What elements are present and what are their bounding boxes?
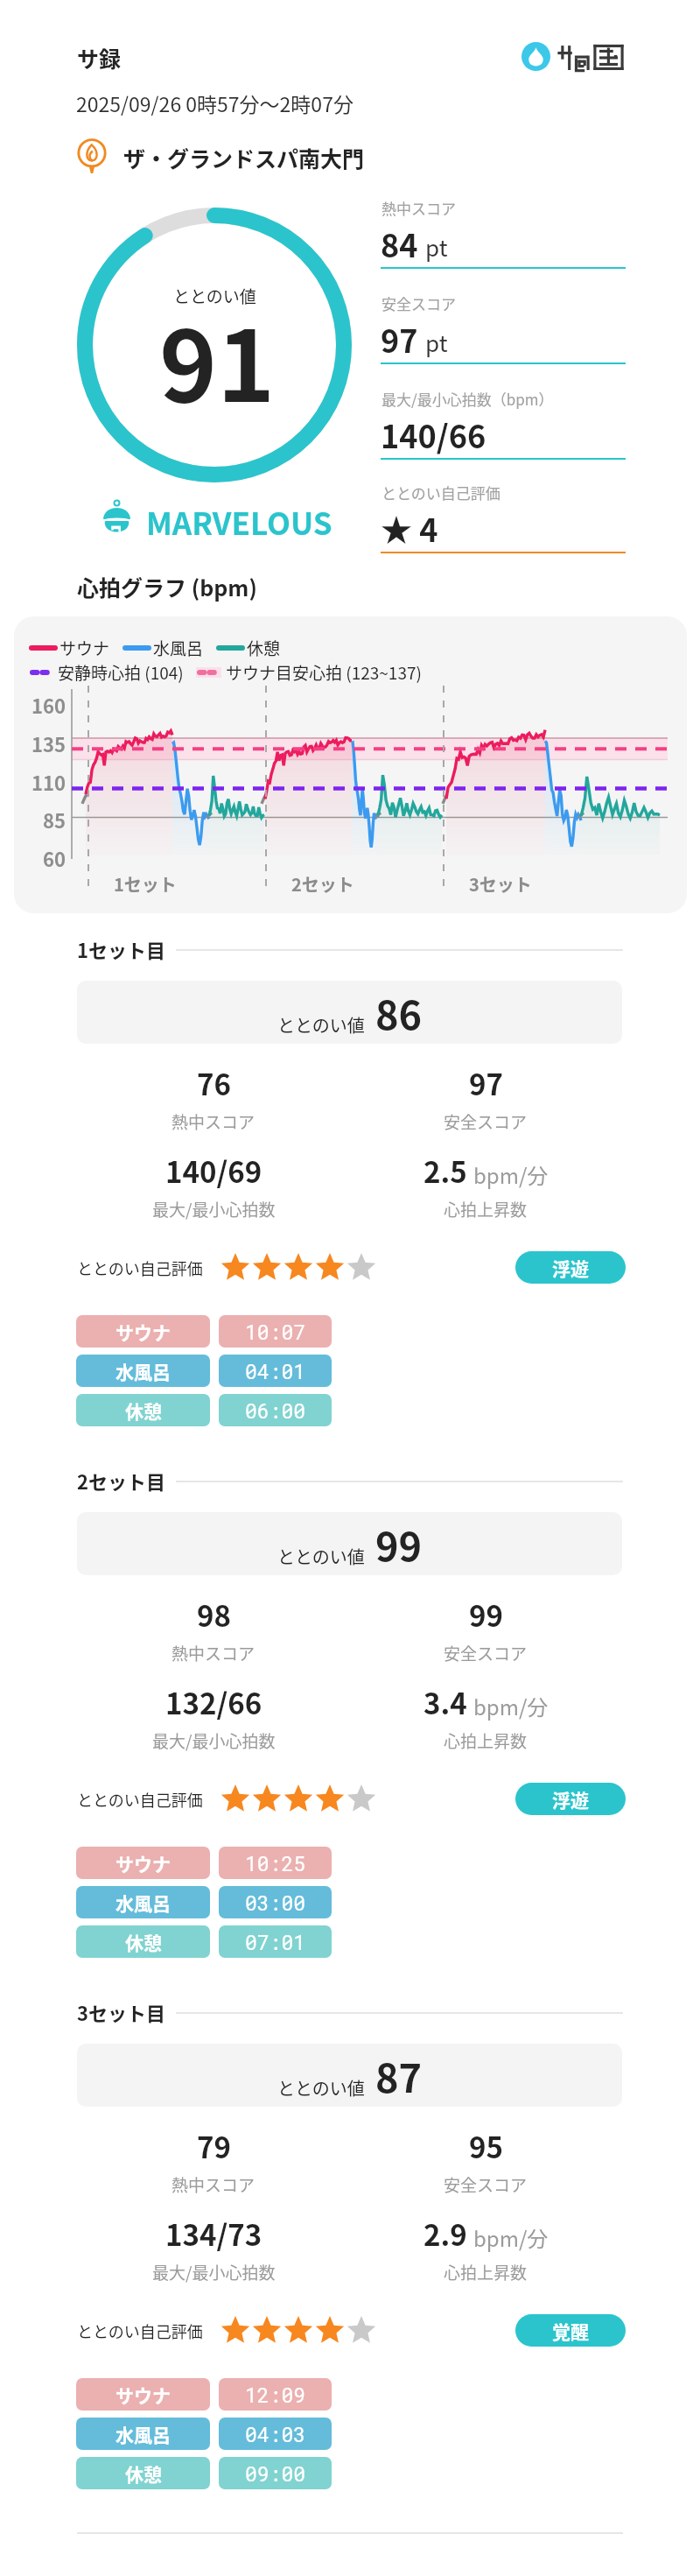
button[interactable]: サウナ [76, 2378, 210, 2411]
staticText: ザ・グランドスパ南大門 [123, 142, 365, 173]
staticText: 休憩 [125, 1397, 162, 1424]
staticText: 76 [197, 1062, 231, 1104]
button[interactable]: 覚醒 [515, 2314, 626, 2347]
staticText: bpm/分 [473, 1691, 549, 1721]
staticText: サウナ [59, 636, 110, 660]
staticText: 12:09 [245, 2382, 306, 2408]
staticText: 安全スコア [444, 1109, 528, 1134]
staticText: 心拍グラフ (bpm) [77, 571, 257, 602]
staticText: 安全スコア [381, 292, 456, 314]
staticText: 最大/最小心拍数 [152, 1197, 276, 1221]
staticText: 心拍上昇数 [444, 1728, 528, 1753]
staticText: 3セット目 [77, 1998, 165, 2026]
staticText: サ録 [77, 42, 122, 74]
staticText: ととのい自己評価 [77, 2319, 203, 2342]
button[interactable]: サの国 [521, 42, 626, 71]
button[interactable]: ととのい値 [77, 2044, 622, 2107]
button[interactable]: 06:00 [219, 1394, 332, 1426]
staticText: 132/66 [165, 1681, 262, 1723]
staticText: 安全スコア [444, 1641, 528, 1665]
staticText: 熱中スコア [171, 1109, 255, 1134]
button[interactable]: 休憩 [76, 1925, 210, 1958]
button[interactable]: ととのい自己評価 4/5 [220, 1784, 376, 1813]
staticText: 60 [14, 844, 66, 872]
button[interactable]: 休憩 [76, 1394, 210, 1426]
staticText: 熱中スコア [171, 2172, 255, 2197]
staticText: ととのい自己評価 [77, 1788, 203, 1811]
button[interactable]: 79 [73, 2125, 353, 2197]
staticText: 心拍上昇数 [444, 2260, 528, 2284]
button[interactable]: ととのい値 [77, 1512, 622, 1575]
button[interactable]: 134/73 [73, 2213, 353, 2284]
staticText: 86 [375, 984, 423, 1041]
button[interactable]: 76 [73, 1062, 353, 1134]
button[interactable]: サウナ [76, 1847, 210, 1879]
button[interactable]: 03:00 [219, 1886, 332, 1918]
staticText: サウナ [115, 1319, 171, 1345]
staticText: 水風呂 [115, 1358, 171, 1384]
button[interactable]: 2.5 [346, 1150, 626, 1221]
staticText: ★ 4 [381, 505, 438, 551]
button[interactable]: 10:07 [219, 1315, 332, 1348]
staticText: サウナ目安心拍 (123~137) [226, 660, 422, 685]
button[interactable]: ザ・グランドスパ南大門 [72, 136, 365, 176]
staticText: 79 [197, 2125, 231, 2167]
button[interactable]: 2.9 [346, 2213, 626, 2284]
button[interactable]: 3.4 [346, 1681, 626, 1753]
button[interactable]: ととのい自己評価 4/5 [220, 1252, 376, 1282]
staticText: 140/66 [381, 412, 486, 457]
staticText: pt [425, 326, 448, 359]
staticText: 水風呂 [115, 2421, 171, 2447]
button[interactable]: 07:01 [219, 1925, 332, 1958]
staticText: 最大/最小心拍数（bpm） [381, 388, 554, 410]
button[interactable]: 99 [346, 1594, 626, 1665]
staticText: 87 [375, 2047, 423, 2104]
staticText: 心拍上昇数 [444, 1197, 528, 1221]
staticText: 97 [381, 316, 418, 362]
staticText: サウナ [115, 1850, 171, 1876]
staticText: 安静時心拍 (104) [58, 660, 184, 685]
staticText: 134/73 [165, 2213, 262, 2255]
staticText: 水風呂 [115, 1890, 171, 1916]
staticText: 03:00 [245, 1890, 306, 1916]
button[interactable]: ととのい自己評価 4/5 [220, 2315, 376, 2345]
button[interactable]: 12:09 [219, 2378, 332, 2411]
button[interactable]: 132/66 [73, 1681, 353, 1753]
staticText: bpm/分 [473, 1159, 549, 1190]
staticText: 3.4 [423, 1681, 467, 1723]
staticText: 95 [469, 2125, 503, 2167]
button[interactable]: 140/69 [73, 1150, 353, 1221]
staticText: 99 [469, 1594, 503, 1636]
button[interactable]: ととのい値 [77, 981, 622, 1044]
staticText: 140/69 [165, 1150, 262, 1192]
button[interactable]: 09:00 [219, 2457, 332, 2489]
staticText: 安全スコア [444, 2172, 528, 2197]
staticText: 浮遊 [552, 1255, 589, 1281]
button[interactable]: 水風呂 [76, 1355, 210, 1387]
staticText: 水風呂 [153, 636, 204, 660]
button[interactable]: 04:01 [219, 1355, 332, 1387]
staticText: 10:25 [245, 1850, 306, 1876]
staticText: 04:03 [245, 2421, 306, 2447]
button[interactable]: 10:25 [219, 1847, 332, 1879]
button[interactable]: 95 [346, 2125, 626, 2197]
staticText: 1セット目 [77, 935, 165, 963]
staticText: 99 [375, 1516, 423, 1573]
button[interactable]: 98 [73, 1594, 353, 1665]
staticText: 97 [469, 1062, 503, 1104]
button[interactable]: 水風呂 [76, 1886, 210, 1918]
staticText: pt [425, 230, 448, 264]
staticText: 最大/最小心拍数 [152, 2260, 276, 2284]
button[interactable]: サウナ [76, 1315, 210, 1348]
staticText: ととのい値 [277, 1544, 365, 1569]
staticText: 熱中スコア [171, 1641, 255, 1665]
button[interactable]: 水風呂 [76, 2418, 210, 2450]
staticText: 2セット [291, 871, 354, 897]
button[interactable]: 休憩 [76, 2457, 210, 2489]
button[interactable]: 浮遊 [515, 1251, 626, 1284]
button[interactable]: 04:03 [219, 2418, 332, 2450]
button[interactable]: 97 [346, 1062, 626, 1134]
button[interactable]: 浮遊 [515, 1783, 626, 1815]
staticText: 休憩 [125, 1929, 162, 1955]
staticText: 07:01 [245, 1929, 306, 1955]
